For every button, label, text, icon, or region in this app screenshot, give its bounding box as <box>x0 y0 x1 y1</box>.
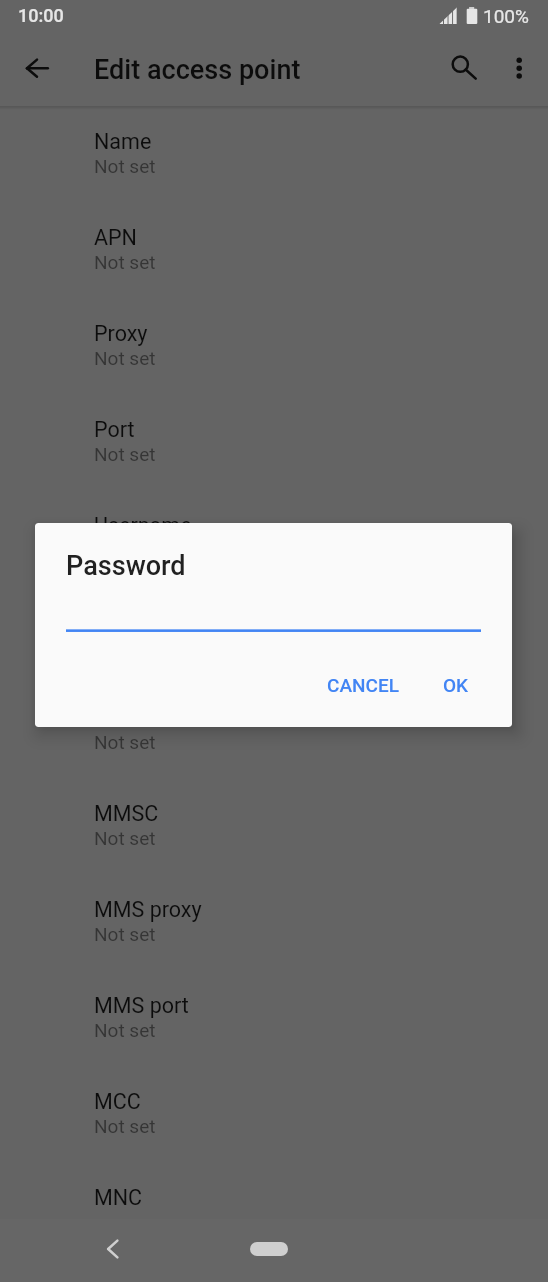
staticText: Not set <box>94 155 156 177</box>
staticText: 100% <box>483 5 529 27</box>
staticText: Not set <box>94 251 156 273</box>
button[interactable]: OK <box>428 661 483 709</box>
staticText: Edit access point <box>94 54 301 86</box>
staticText: MMS proxy <box>94 897 202 922</box>
button[interactable]: Navigate up <box>13 44 61 92</box>
staticText: Not set <box>94 731 156 753</box>
button[interactable]: Back <box>89 1225 137 1273</box>
staticText: Not set <box>94 827 156 849</box>
button[interactable]: Password <box>0 590 548 686</box>
button[interactable]: Port <box>0 398 548 494</box>
staticText: Server <box>94 705 155 730</box>
staticText: Not set <box>94 347 156 369</box>
staticText: 10:00 <box>18 5 64 26</box>
staticText: Not set <box>94 1019 156 1041</box>
button[interactable]: MMS port <box>0 974 548 1070</box>
staticText: MCC <box>94 1089 141 1114</box>
staticText: MMS port <box>94 993 189 1018</box>
button[interactable]: Home <box>250 1242 288 1256</box>
staticText: Not set <box>94 1115 156 1137</box>
staticText: Password <box>94 609 189 634</box>
button[interactable]: MNC <box>0 1166 548 1262</box>
button[interactable]: Proxy <box>0 302 548 398</box>
button[interactable]: More options <box>495 44 543 92</box>
button[interactable]: Name <box>0 110 548 206</box>
staticText: Not set <box>94 443 156 465</box>
button[interactable]: MCC <box>0 1070 548 1166</box>
button[interactable]: MMSC <box>0 782 548 878</box>
staticText: CANCEL <box>327 674 399 696</box>
staticText: Not set <box>94 923 156 945</box>
button[interactable]: APN <box>0 206 548 302</box>
staticText: Password <box>66 550 186 582</box>
button[interactable]: Search <box>436 44 484 92</box>
button[interactable]: Server <box>0 686 548 782</box>
staticText: OK <box>443 674 469 696</box>
staticText: MMSC <box>94 801 159 826</box>
staticText: Not set <box>94 539 156 561</box>
staticText: Proxy <box>94 321 148 346</box>
button[interactable]: MMS proxy <box>0 878 548 974</box>
staticText: Name <box>94 129 152 154</box>
button[interactable]: Password field <box>66 583 481 633</box>
staticText: Username <box>94 513 192 538</box>
staticText: Port <box>94 417 135 442</box>
button[interactable]: CANCEL <box>312 661 413 709</box>
button[interactable]: Username <box>0 494 548 590</box>
staticText: APN <box>94 225 137 250</box>
staticText: MNC <box>94 1185 143 1210</box>
